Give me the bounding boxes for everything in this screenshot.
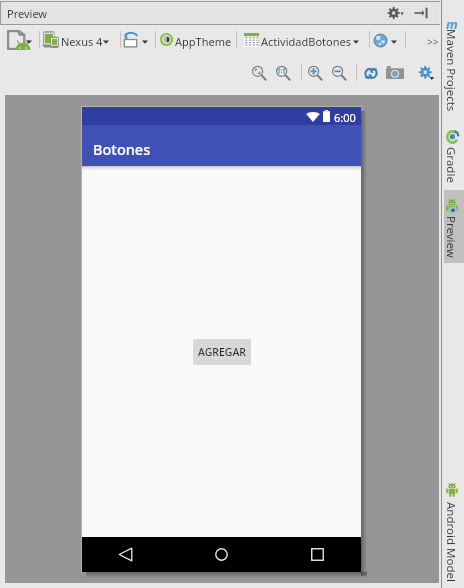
button[interactable] [442, 196, 464, 258]
staticText: Maven Projects [443, 29, 459, 112]
staticText: Botones [93, 139, 151, 159]
button[interactable]: AGREGAR [193, 339, 251, 365]
button[interactable]: AppTheme [175, 34, 232, 49]
button[interactable] [442, 127, 464, 182]
button[interactable]: Recents [301, 538, 334, 571]
button[interactable]: Hide [412, 6, 428, 20]
button[interactable]: Device [43, 30, 59, 49]
staticText: 6:00 [334, 110, 356, 125]
button[interactable]: Settings [419, 66, 432, 79]
button[interactable]: Zoom to fit [252, 66, 266, 80]
button[interactable]: Screenshot [386, 66, 404, 79]
staticText: Preview [7, 6, 48, 21]
button[interactable]: Orientation [123, 32, 140, 49]
button[interactable]: Zoom in [308, 66, 322, 80]
staticText: Gradle [443, 147, 459, 183]
button[interactable]: Zoom out [332, 66, 346, 80]
staticText: Android Model [443, 502, 459, 582]
button[interactable]: Refresh [364, 66, 378, 81]
staticText: m [446, 15, 458, 33]
button[interactable]: Locale [374, 34, 387, 47]
staticText: Nexus 4 [61, 34, 103, 49]
button[interactable] [60, 31, 109, 48]
button[interactable] [442, 480, 464, 577]
staticText: AGREGAR [198, 345, 246, 359]
staticText: ActividadBotones [261, 34, 351, 49]
button[interactable]: Home [205, 538, 238, 571]
button[interactable]: Back [109, 538, 142, 571]
button[interactable]: Settings [388, 6, 404, 20]
button[interactable]: Activity [244, 33, 259, 47]
staticText: Preview [443, 216, 459, 258]
button[interactable]: Theme [161, 34, 172, 45]
button[interactable]: >> [427, 35, 439, 49]
button[interactable]: Zoom to 100% [276, 66, 290, 80]
button[interactable] [442, 12, 464, 111]
button[interactable]: Layout file [7, 30, 31, 50]
button[interactable] [260, 31, 359, 48]
